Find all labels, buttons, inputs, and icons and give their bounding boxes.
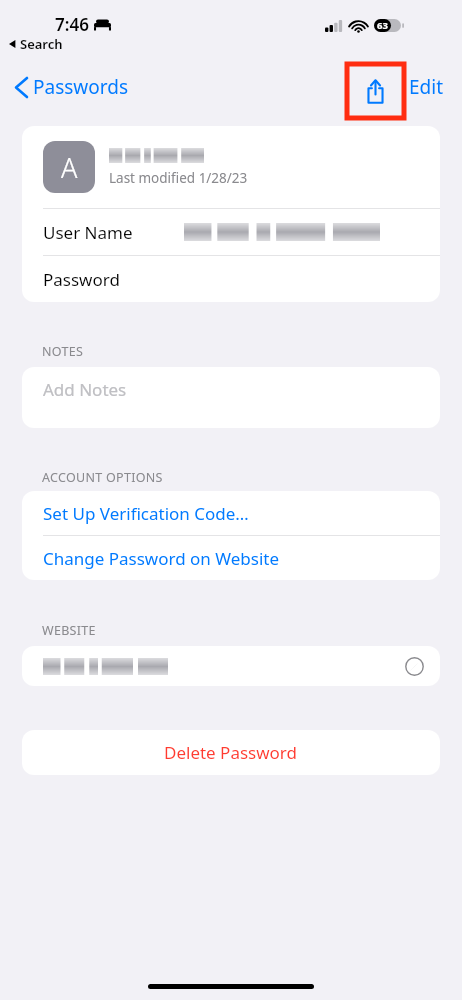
staticText: Password [43,268,120,291]
staticText: Set Up Verification Code… [43,502,249,525]
staticText: User Name [43,221,133,244]
staticText: Last modified 1/28/23 [109,169,248,187]
staticText: 63 [377,19,388,32]
staticText: NOTES [42,343,84,360]
button[interactable]: Search [9,35,63,53]
staticText: Search [20,35,63,53]
button[interactable]: Password [22,256,440,302]
staticText: WEBSITE [42,622,96,639]
button[interactable]: Share [347,64,404,118]
staticText: ACCOUNT OPTIONS [42,469,163,486]
other: Open in Safari [397,649,431,683]
button[interactable]: Set Up Verification Code… [22,491,440,535]
staticText: Change Password on Website [43,547,280,570]
staticText: Edit [409,74,444,100]
staticText: A [61,149,78,186]
button[interactable]: Edit [405,70,448,104]
staticText: Add Notes [43,378,127,401]
button[interactable]: Add Notes [22,367,440,428]
button[interactable]: Delete Password [22,730,440,775]
button[interactable]: A [22,126,440,208]
staticText: Delete Password [164,741,298,764]
staticText: 7:46 [55,13,89,36]
staticText: Passwords [33,74,129,100]
button[interactable]: Passwords [12,70,133,104]
button[interactable]: Change Password on Website [22,536,440,580]
button[interactable]: Open in Safari [22,646,440,686]
button[interactable]: User Name [22,209,440,255]
